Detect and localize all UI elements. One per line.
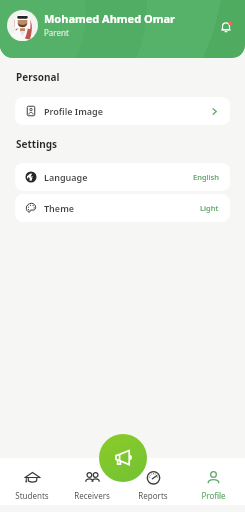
staticText: English xyxy=(193,172,219,182)
button[interactable]: Students xyxy=(4,458,60,501)
staticText: Students xyxy=(15,490,49,501)
staticText: Theme xyxy=(44,202,75,214)
button[interactable]: Notifications xyxy=(215,16,237,38)
staticText: Receivers xyxy=(74,490,110,501)
button[interactable]: Receivers xyxy=(64,458,120,501)
staticText: Settings xyxy=(16,137,57,151)
button[interactable]: Profile xyxy=(185,458,241,501)
staticText: Language xyxy=(44,171,88,183)
button[interactable]: Reports xyxy=(125,458,181,501)
staticText: Profile Image xyxy=(44,105,103,117)
staticText: Mohamed Ahmed Omar xyxy=(44,11,175,26)
staticText: Light xyxy=(200,203,219,213)
button[interactable]: New announcement xyxy=(99,434,147,482)
button[interactable]: Theme xyxy=(15,194,230,222)
staticText: Personal xyxy=(16,70,60,84)
button[interactable]: Language xyxy=(15,163,230,191)
staticText: Profile xyxy=(201,490,226,501)
staticText: Parent xyxy=(44,27,69,38)
button[interactable]: Profile Image xyxy=(15,97,230,125)
staticText: Reports xyxy=(138,490,168,501)
